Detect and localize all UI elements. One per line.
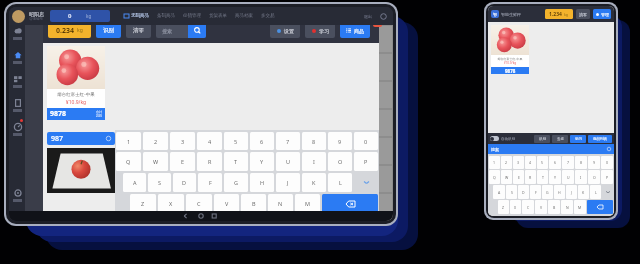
button[interactable]: R [197,152,222,171]
button[interactable]: 2 [501,156,512,169]
button[interactable]: M [295,194,320,213]
button[interactable]: 0.234 [48,23,91,38]
button[interactable]: D [173,173,196,192]
button[interactable]: 金 果k（高品.. [84,82,392,108]
button[interactable]: 设置 [270,23,300,38]
button[interactable]: 金锦葡进口.. [84,166,392,192]
button[interactable]: 9 [328,132,352,150]
button[interactable]: X [158,194,184,213]
button[interactable]: Sidebar item 0 [9,21,25,45]
button[interactable]: K [578,185,589,199]
button[interactable]: A [123,173,146,192]
button[interactable]: Backspace [587,200,613,214]
button[interactable]: 3 [170,132,195,150]
button[interactable]: Sidebar item 1 [9,45,25,69]
button[interactable]: Sidebar item 2 [9,69,25,93]
button[interactable]: T [537,170,548,184]
button[interactable]: 0 [50,10,110,22]
button[interactable]: 0 [354,132,378,150]
button[interactable]: 1 [489,156,500,169]
button[interactable]: 3 [513,156,524,169]
button[interactable]: 搜索 [491,144,611,154]
button[interactable]: 1.234 [545,9,573,19]
button[interactable]: 6 [549,156,561,169]
button[interactable]: F [530,185,541,199]
button[interactable]: Sidebar item 3 [9,93,25,117]
button[interactable]: 学习 [570,135,586,143]
button[interactable]: B [548,200,560,214]
button[interactable]: Minimize [380,13,387,20]
button[interactable]: 商品 [340,23,370,38]
button[interactable]: 管理 [593,9,611,19]
button[interactable]: 进口香蕉 [84,26,392,52]
button[interactable]: Y [549,170,561,184]
button[interactable]: I [575,170,587,184]
button[interactable]: C [186,194,212,213]
button[interactable]: V [214,194,239,213]
button[interactable]: T [224,152,248,171]
button[interactable]: 金 导老父母.. [84,110,392,136]
button[interactable]: B [241,194,266,213]
button[interactable]: L [328,173,352,192]
button[interactable]: 9 [588,156,600,169]
button[interactable]: J [276,173,300,192]
button[interactable]: M [574,200,586,214]
button[interactable]: 清零 [126,23,151,38]
button[interactable]: A [493,185,505,199]
button[interactable]: E [170,152,195,171]
button[interactable]: 烟台红富士红-中果 [491,25,529,74]
button[interactable]: X [510,200,521,214]
button[interactable]: N [268,194,293,213]
button[interactable]: U [276,152,300,171]
button[interactable]: 4 [525,156,536,169]
button[interactable]: 去皮 [552,135,568,143]
button[interactable]: P [354,152,378,171]
button[interactable]: D [518,185,529,199]
button[interactable]: （Remy Mart.. [84,194,392,220]
button[interactable]: F [198,173,222,192]
button[interactable]: I [302,152,326,171]
button[interactable]: Toggle [490,136,499,141]
button[interactable]: 烟台红富士红-中果 [47,46,105,120]
button[interactable]: 多交易 [261,13,275,19]
button[interactable]: Close [373,15,382,27]
button[interactable]: U [562,170,574,184]
button[interactable]: O [328,152,352,171]
button[interactable]: 条码商品 [157,13,175,19]
button[interactable]: N [561,200,573,214]
button[interactable]: 识别 [96,23,121,38]
button[interactable]: S [506,185,517,199]
button[interactable]: 4 [197,132,222,150]
button[interactable]: R [525,170,536,184]
button[interactable]: V [535,200,547,214]
button[interactable]: Backspace [322,194,378,213]
button[interactable]: 2 [143,132,168,150]
button[interactable]: G [542,185,553,199]
button[interactable]: Search [188,23,206,38]
button[interactable]: K [302,173,326,192]
button[interactable]: 7 [276,132,300,150]
button[interactable]: 7 [562,156,574,169]
button[interactable]: 货架表单 [209,13,227,19]
button[interactable]: 987 [51,132,111,145]
button[interactable]: 商品档案 [235,13,253,19]
button[interactable]: Z [130,194,156,213]
button[interactable]: 0 [601,156,613,169]
button[interactable]: W [143,152,168,171]
button[interactable]: App [491,10,499,18]
button[interactable]: G [224,173,248,192]
button[interactable]: Hide keyboard [354,173,378,192]
button[interactable]: 商品列表 [588,135,612,143]
button[interactable]: Q [489,170,500,184]
button[interactable]: H [554,185,565,199]
button[interactable]: Profile [12,10,25,23]
button[interactable]: O [588,170,600,184]
button[interactable]: 8 [302,132,326,150]
button[interactable]: 口红香 #2.. [84,138,392,164]
button[interactable]: Hide keyboard [602,185,613,199]
button[interactable]: C [522,200,534,214]
button[interactable]: 识别 [534,135,550,143]
button[interactable]: P [601,170,613,184]
button[interactable]: 5 [537,156,548,169]
button[interactable]: L [590,185,601,199]
